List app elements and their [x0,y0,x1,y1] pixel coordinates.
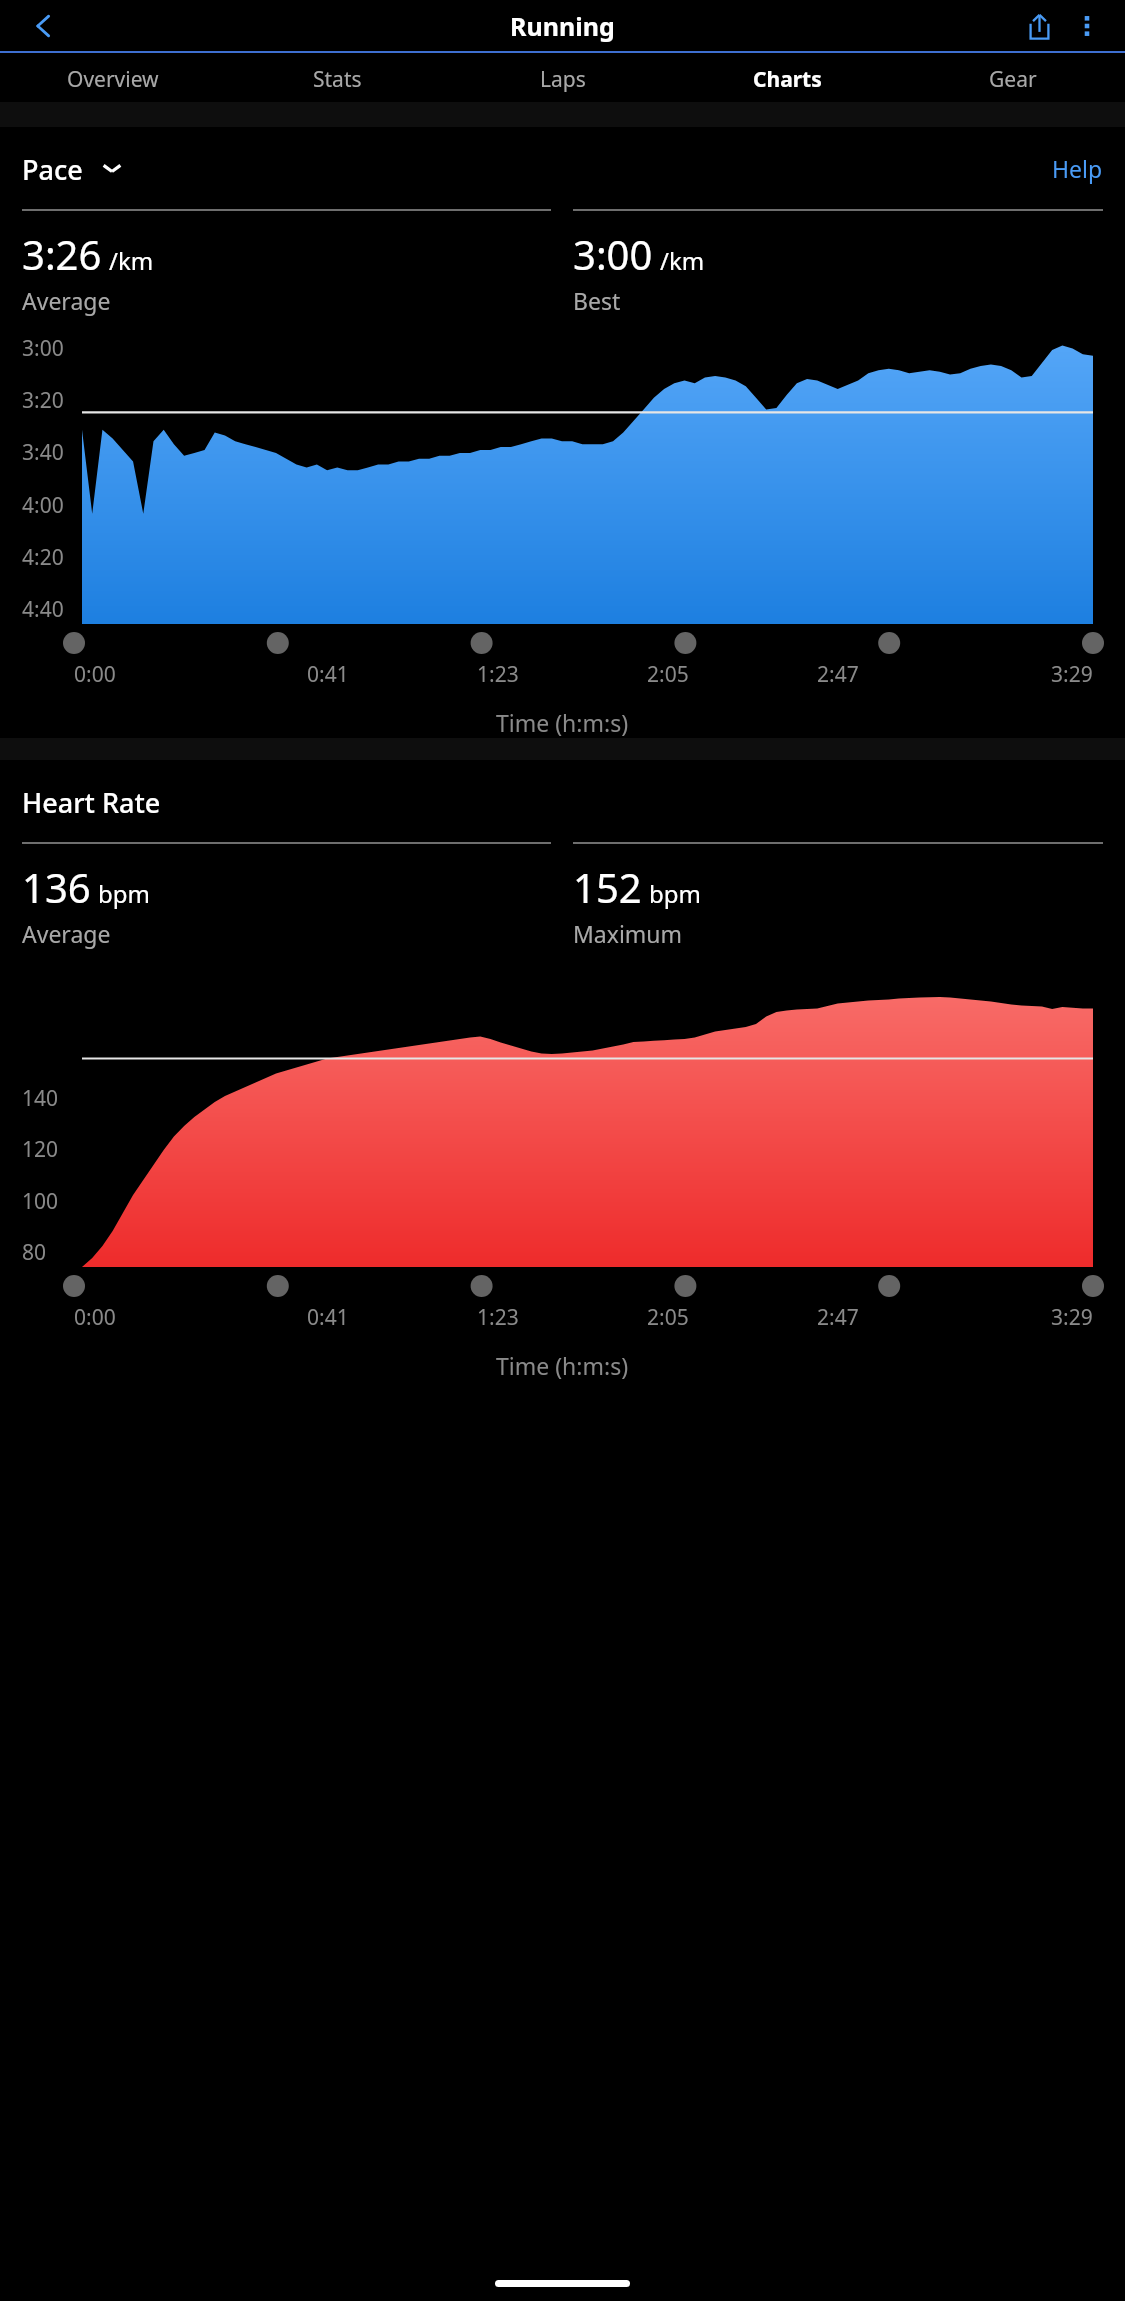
staticText: 3:40 [22,438,64,467]
staticText: /km [109,244,154,277]
staticText: 3:20 [22,386,64,415]
staticText: 100 [22,1187,59,1216]
staticText: 80 [22,1238,47,1267]
button[interactable]: Overview [0,53,225,102]
staticText: 2:05 [647,1303,689,1332]
button[interactable]: Back [22,4,66,48]
staticText: Maximum [573,918,683,949]
staticText: 4:20 [22,543,64,572]
staticText: 140 [22,1084,59,1113]
button[interactable]: Gear [900,53,1125,102]
button[interactable]: Share [1015,2,1063,50]
staticText: Laps [540,65,586,94]
staticText: Average [22,918,111,949]
staticText: 3:00 [573,227,653,281]
staticText: 2:47 [817,660,859,689]
staticText: Heart Rate [22,784,161,818]
staticText: Time (h:m:s) [496,707,629,738]
staticText: Charts [753,65,822,94]
staticText: 0:00 [74,1303,116,1332]
button[interactable]: Laps [450,53,675,102]
button[interactable]: Help [1052,153,1103,184]
staticText: 3:26 [22,227,102,281]
staticText: 4:00 [22,491,64,520]
staticText: 120 [22,1135,59,1164]
staticText: Average [22,285,111,316]
staticText: Pace [22,151,83,185]
staticText: Stats [313,65,362,94]
staticText: Overview [67,65,159,94]
staticText: Help [1052,153,1103,184]
button[interactable]: Heart Rate [22,784,161,818]
button[interactable]: More options [1063,2,1111,50]
staticText: 4:40 [22,595,64,624]
staticText: 0:00 [74,660,116,689]
button[interactable]: Charts [675,53,900,102]
staticText: 3:00 [22,334,64,363]
staticText: Best [573,285,621,316]
staticText: Time (h:m:s) [496,1350,629,1381]
staticText: Gear [989,65,1037,94]
staticText: 2:05 [647,660,689,689]
staticText: 3:29 [1051,1303,1093,1332]
staticText: 136 [22,860,91,914]
staticText: bpm [98,877,150,910]
staticText: 0:41 [307,1303,349,1332]
staticText: 2:47 [817,1303,859,1332]
button[interactable]: Stats [225,53,450,102]
staticText: 1:23 [477,1303,519,1332]
button[interactable]: Pace [22,151,123,185]
staticText: 0:41 [307,660,349,689]
staticText: bpm [649,877,701,910]
staticText: 1:23 [477,660,519,689]
staticText: 3:29 [1051,660,1093,689]
staticText: /km [660,244,705,277]
staticText: 152 [573,860,642,914]
staticText: Running [510,9,615,43]
